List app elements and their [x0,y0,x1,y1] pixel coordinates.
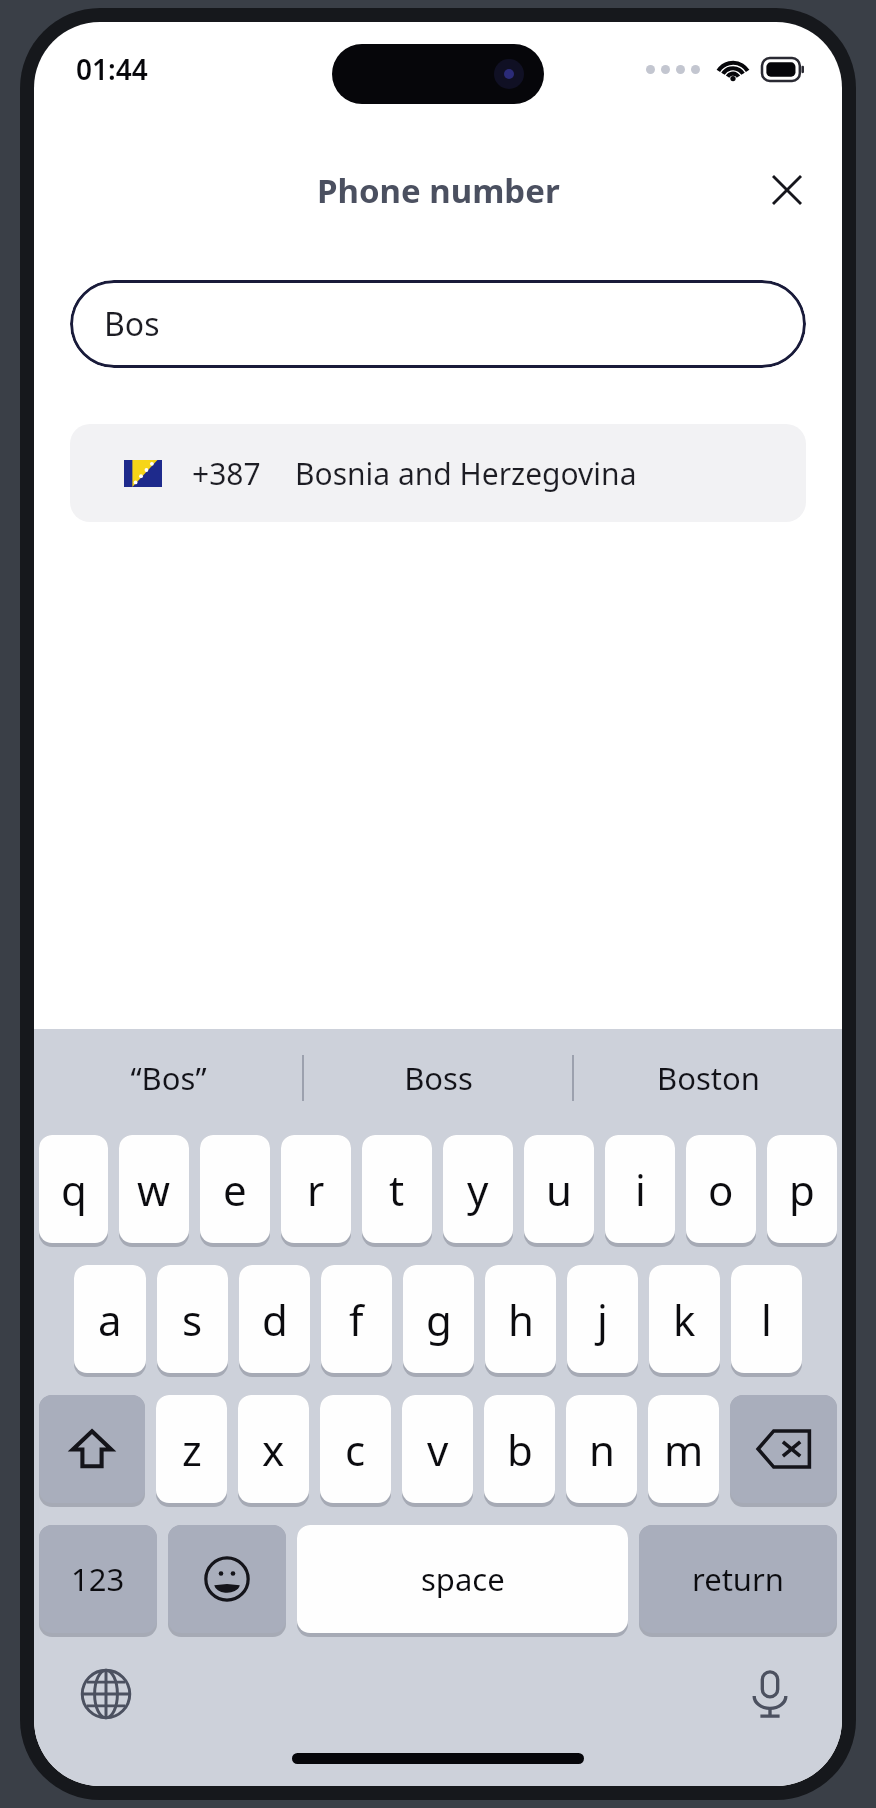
staticText: d [262,1291,288,1348]
button[interactable]: Bos [70,280,806,368]
staticText: m [664,1421,704,1478]
button[interactable]: y [443,1135,513,1247]
button[interactable]: “Bos” [34,1029,302,1127]
staticText: u [546,1161,572,1218]
staticText: Boston [657,1057,760,1099]
button[interactable]: b [484,1395,555,1507]
button[interactable]: Boss [304,1029,572,1127]
button[interactable]: Shift [39,1395,145,1507]
staticText: j [597,1291,608,1348]
staticText: z [182,1421,202,1478]
staticText: r [307,1161,325,1218]
button[interactable]: p [767,1135,837,1247]
button[interactable]: Close [758,161,816,219]
button[interactable]: return [639,1525,837,1637]
staticText: t [389,1161,405,1218]
staticText: Bos [104,302,160,346]
staticText: +387 [192,453,261,494]
staticText: return [692,1558,784,1600]
staticText: s [182,1291,203,1348]
staticText: o [708,1161,734,1218]
staticText: space [421,1558,505,1600]
button[interactable]: l [731,1265,802,1377]
button[interactable]: u [524,1135,594,1247]
staticText: Boss [404,1057,473,1099]
staticText: x [262,1421,285,1478]
staticText: p [789,1161,815,1218]
button[interactable]: m [648,1395,719,1507]
button[interactable]: h [485,1265,556,1377]
button[interactable]: q [39,1135,108,1247]
staticText: Phone number [317,168,560,213]
staticText: k [673,1291,696,1348]
staticText: l [761,1291,772,1348]
staticText: f [349,1291,364,1348]
button[interactable]: t [362,1135,432,1247]
button[interactable]: g [403,1265,474,1377]
button[interactable]: o [686,1135,756,1247]
staticText: v [427,1421,449,1478]
staticText: 01:44 [76,50,148,88]
staticText: w [137,1161,171,1218]
button[interactable]: s [157,1265,228,1377]
staticText: b [507,1421,533,1478]
staticText: h [508,1291,534,1348]
staticText: a [98,1291,122,1348]
button[interactable]: k [649,1265,720,1377]
staticText: c [345,1421,366,1478]
staticText: “Bos” [130,1057,207,1099]
button[interactable]: a [74,1265,146,1377]
staticText: y [467,1161,489,1218]
button[interactable]: Numbers [39,1525,157,1637]
staticText: q [61,1161,87,1218]
button[interactable]: x [238,1395,309,1507]
button[interactable]: i [605,1135,675,1247]
staticText: 123 [71,1558,125,1600]
button[interactable]: j [567,1265,638,1377]
staticText: e [223,1161,247,1218]
staticText: g [426,1291,452,1348]
button[interactable]: f [321,1265,392,1377]
button[interactable]: c [320,1395,391,1507]
staticText: n [589,1421,615,1478]
staticText: i [635,1161,646,1218]
button[interactable]: Backspace [730,1395,837,1507]
button[interactable]: z [156,1395,227,1507]
button[interactable]: v [402,1395,473,1507]
button[interactable]: d [239,1265,310,1377]
button[interactable]: Emoji [168,1525,286,1637]
button[interactable]: e [200,1135,270,1247]
button[interactable]: r [281,1135,351,1247]
staticText: Bosnia and Herzegovina [295,453,637,494]
button[interactable]: Change keyboard [74,1662,138,1726]
button[interactable]: n [566,1395,637,1507]
button[interactable]: Boston [574,1029,842,1127]
button[interactable]: w [119,1135,189,1247]
button[interactable]: Dictation [738,1662,802,1726]
button[interactable]: space [297,1525,628,1637]
button[interactable]: +387 [70,424,806,522]
